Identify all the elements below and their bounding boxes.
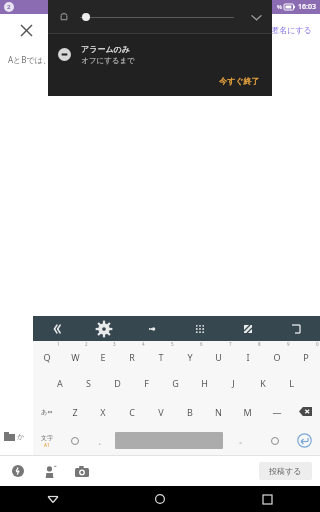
- staticText: 6: [200, 341, 203, 347]
- staticText: アラームのみ: [81, 44, 130, 54]
- button[interactable]: 7: [204, 341, 233, 369]
- button[interactable]: 1: [33, 341, 61, 369]
- button[interactable]: Backspace: [291, 397, 320, 426]
- staticText: O: [273, 351, 281, 363]
- button[interactable]: Enter: [288, 426, 320, 455]
- staticText: H: [201, 377, 208, 389]
- button[interactable]: 今すぐ終了: [215, 74, 264, 88]
- button[interactable]: V: [146, 397, 175, 426]
- staticText: C: [129, 406, 135, 418]
- button[interactable]: Expand: [246, 7, 266, 27]
- staticText: T: [158, 351, 164, 363]
- staticText: か: [17, 432, 25, 441]
- staticText: 9: [287, 341, 290, 347]
- button[interactable]: Back: [40, 486, 66, 512]
- button[interactable]: 2: [61, 341, 89, 369]
- button[interactable]: 8: [233, 341, 262, 369]
- staticText: U: [215, 351, 222, 363]
- staticText: R: [129, 351, 135, 363]
- button[interactable]: N: [204, 397, 233, 426]
- button[interactable]: Close: [10, 14, 42, 46]
- staticText: K: [260, 377, 266, 389]
- button[interactable]: Theme: [224, 316, 272, 341]
- button[interactable]: H: [190, 369, 219, 397]
- button[interactable]: G: [161, 369, 190, 397]
- button[interactable]: A: [46, 369, 74, 397]
- button[interactable]: あ⇔: [33, 397, 61, 426]
- staticText: 5: [171, 341, 174, 347]
- button[interactable]: Mention: [38, 459, 62, 483]
- button[interactable]: 投稿する: [259, 462, 312, 480]
- staticText: A: [57, 377, 63, 389]
- staticText: 1: [57, 341, 60, 347]
- button[interactable]: —: [262, 397, 291, 426]
- button[interactable]: Recents: [254, 486, 280, 512]
- staticText: Y: [187, 351, 193, 363]
- button[interactable]: Z: [61, 397, 89, 426]
- button[interactable]: Voice: [261, 426, 288, 455]
- button[interactable]: Emoji: [61, 426, 88, 455]
- button[interactable]: M: [233, 397, 262, 426]
- button[interactable]: F: [132, 369, 161, 397]
- button[interactable]: Symbols: [128, 316, 176, 341]
- button[interactable]: B: [175, 397, 204, 426]
- button[interactable]: Collapse keyboard: [33, 316, 80, 341]
- staticText: X: [100, 406, 106, 418]
- staticText: 2: [7, 3, 11, 11]
- button[interactable]: K: [248, 369, 277, 397]
- button[interactable]: J: [219, 369, 248, 397]
- button[interactable]: 5: [146, 341, 175, 369]
- staticText: M: [243, 406, 252, 418]
- staticText: A1: [44, 442, 50, 448]
- button[interactable]: 匿名にする: [267, 21, 316, 39]
- staticText: オフにするまで: [81, 56, 135, 65]
- staticText: 今すぐ終了: [219, 76, 260, 86]
- button[interactable]: 4: [117, 341, 146, 369]
- staticText: AとBでは、: [8, 54, 51, 65]
- staticText: 7: [229, 341, 232, 347]
- staticText: G: [172, 377, 179, 389]
- staticText: 3: [113, 341, 116, 347]
- button[interactable]: Resize: [272, 316, 320, 341]
- staticText: W: [71, 351, 80, 363]
- staticText: J: [232, 377, 235, 389]
- staticText: P: [303, 351, 309, 363]
- staticText: 16:03: [298, 2, 316, 12]
- staticText: 4: [142, 341, 145, 347]
- button[interactable]: 0: [291, 341, 320, 369]
- button[interactable]: D: [103, 369, 132, 397]
- staticText: 、: [98, 436, 106, 446]
- button[interactable]: S: [74, 369, 103, 397]
- button[interactable]: Keypad: [176, 316, 224, 341]
- button[interactable]: Settings: [80, 316, 128, 341]
- button[interactable]: Home: [147, 486, 173, 512]
- button[interactable]: L: [277, 369, 306, 397]
- staticText: V: [158, 406, 164, 418]
- staticText: L: [289, 377, 294, 389]
- button[interactable]: 9: [262, 341, 291, 369]
- staticText: あ⇔: [41, 408, 53, 416]
- staticText: 2: [85, 341, 88, 347]
- button[interactable]: 3: [89, 341, 117, 369]
- staticText: Z: [72, 406, 78, 418]
- button[interactable]: 6: [175, 341, 204, 369]
- button[interactable]: Mood: [6, 459, 30, 483]
- button[interactable]: Input mode: [33, 426, 61, 455]
- staticText: 投稿する: [269, 466, 302, 476]
- staticText: %: [277, 3, 282, 11]
- staticText: B: [187, 406, 193, 418]
- button[interactable]: X: [89, 397, 117, 426]
- staticText: 。: [239, 436, 246, 445]
- button[interactable]: Camera: [70, 459, 94, 483]
- staticText: Q: [43, 351, 51, 363]
- button[interactable]: C: [117, 397, 146, 426]
- staticText: S: [86, 377, 91, 389]
- staticText: 0: [316, 341, 319, 347]
- staticText: 8: [258, 341, 261, 347]
- staticText: F: [144, 377, 149, 389]
- staticText: 文字: [41, 434, 53, 442]
- staticText: I: [246, 351, 250, 363]
